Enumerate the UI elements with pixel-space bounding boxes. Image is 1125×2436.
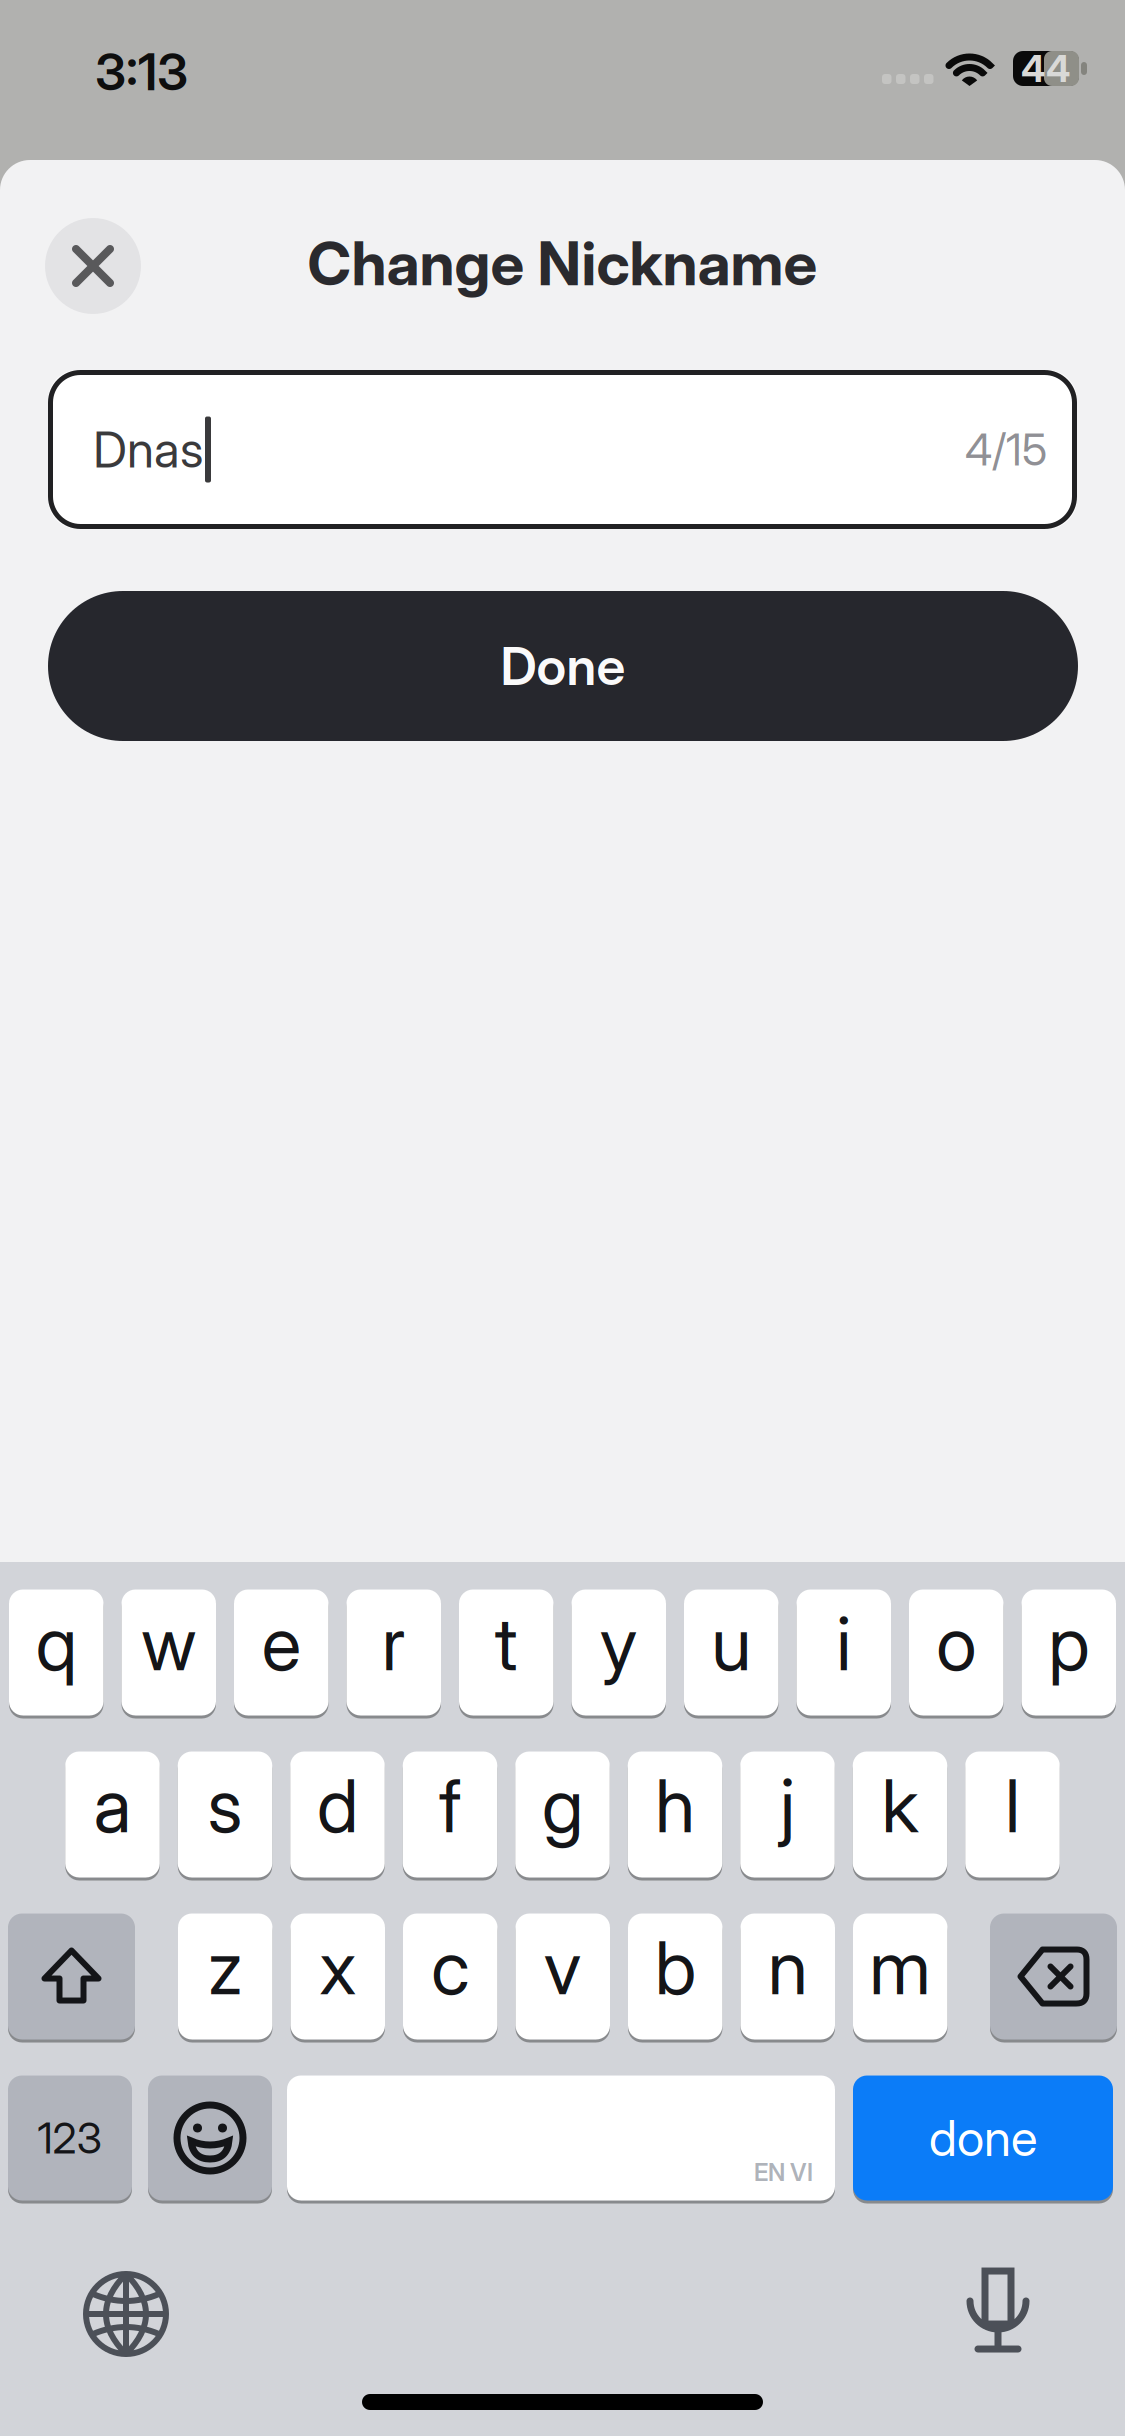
staticText: 123 <box>37 2113 102 2163</box>
button[interactable]: Delete <box>990 1912 1117 2041</box>
button[interactable]: g <box>515 1750 610 1879</box>
button[interactable]: q <box>9 1588 103 1717</box>
button[interactable]: p <box>1021 1588 1116 1717</box>
staticText: i <box>836 1600 851 1687</box>
button[interactable]: s <box>178 1750 272 1879</box>
staticText: w <box>141 1600 196 1687</box>
staticText: 44 <box>1021 46 1071 90</box>
staticText: 3:13 <box>95 42 188 102</box>
staticText: q <box>36 1600 77 1687</box>
staticText: j <box>780 1762 795 1849</box>
button[interactable]: Close <box>45 218 141 314</box>
button[interactable]: Emoji <box>148 2074 272 2202</box>
staticText: l <box>1005 1762 1020 1849</box>
staticText: a <box>93 1762 131 1849</box>
staticText: g <box>542 1762 583 1849</box>
button[interactable]: d <box>290 1750 385 1879</box>
staticText: EN VI <box>754 2158 813 2186</box>
staticText: c <box>431 1924 469 2011</box>
staticText: 4/15 <box>965 423 1047 475</box>
button[interactable]: l <box>965 1750 1060 1879</box>
button[interactable]: done <box>853 2074 1113 2202</box>
staticText: b <box>655 1924 696 2011</box>
button[interactable]: Space <box>287 2074 835 2202</box>
button[interactable]: j <box>740 1750 835 1879</box>
staticText: h <box>655 1762 695 1849</box>
button[interactable]: v <box>515 1912 610 2041</box>
staticText: x <box>319 1924 356 2011</box>
button[interactable]: t <box>459 1588 553 1717</box>
button[interactable]: n <box>740 1912 835 2041</box>
staticText: f <box>439 1762 461 1849</box>
button[interactable]: r <box>346 1588 441 1717</box>
staticText: s <box>207 1762 242 1849</box>
staticText: o <box>936 1600 976 1687</box>
button[interactable]: Nickname <box>48 370 1077 529</box>
staticText: p <box>1048 1600 1089 1687</box>
button[interactable]: m <box>853 1912 947 2041</box>
button[interactable]: y <box>571 1588 666 1717</box>
button[interactable]: Shift <box>8 1912 135 2041</box>
button[interactable]: c <box>403 1912 497 2041</box>
staticText: e <box>262 1600 301 1687</box>
staticText: k <box>881 1762 918 1849</box>
staticText: Change Nickname <box>307 228 817 299</box>
button[interactable]: Dictation <box>970 2271 1026 2350</box>
button[interactable]: Done <box>48 591 1078 741</box>
button[interactable]: u <box>684 1588 778 1717</box>
staticText: n <box>768 1924 808 2011</box>
button[interactable]: 123 <box>8 2074 132 2202</box>
button[interactable]: i <box>796 1588 891 1717</box>
staticText: u <box>711 1600 751 1687</box>
staticText: r <box>382 1600 406 1687</box>
button[interactable]: z <box>178 1912 272 2041</box>
button[interactable]: a <box>65 1750 160 1879</box>
staticText: z <box>208 1924 243 2011</box>
button[interactable]: o <box>909 1588 1003 1717</box>
staticText: v <box>544 1924 582 2011</box>
button[interactable]: b <box>628 1912 722 2041</box>
button[interactable]: w <box>121 1588 216 1717</box>
staticText: d <box>317 1762 358 1849</box>
button[interactable]: Next keyboard <box>86 2274 166 2354</box>
staticText: m <box>869 1924 931 2011</box>
staticText: Done <box>500 635 625 697</box>
button[interactable]: e <box>234 1588 328 1717</box>
staticText: done <box>929 2109 1037 2167</box>
staticText: Dnas <box>93 420 203 479</box>
staticText: y <box>600 1600 638 1687</box>
button[interactable]: k <box>853 1750 947 1879</box>
button[interactable]: f <box>403 1750 497 1879</box>
button[interactable]: x <box>290 1912 385 2041</box>
button[interactable]: h <box>628 1750 722 1879</box>
staticText: t <box>495 1600 518 1687</box>
